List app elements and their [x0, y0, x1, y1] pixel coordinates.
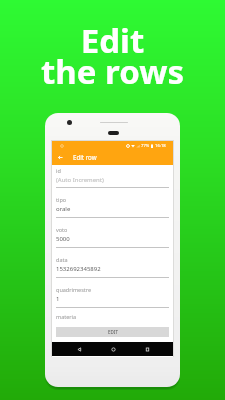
button[interactable]: Recent apps: [141, 343, 153, 355]
staticText: Edit the rows: [0, 18, 225, 93]
staticText: data: [56, 256, 68, 263]
staticText: 5000: [56, 235, 70, 243]
staticText: orale: [56, 205, 71, 213]
staticText: (Auto Increment): [56, 176, 104, 184]
staticText: quadrimestre: [56, 286, 92, 293]
button[interactable]: EDIT: [56, 327, 169, 337]
staticText: EDIT: [108, 329, 118, 335]
staticText: materia: [56, 313, 77, 320]
staticText: 1532692345892: [56, 265, 101, 273]
button[interactable]: Home: [107, 343, 119, 355]
staticText: 1: [56, 295, 60, 303]
staticText: 16:18: [155, 143, 166, 149]
staticText: id: [56, 167, 61, 174]
staticText: Edit row: [73, 153, 97, 161]
staticText: voto: [56, 226, 68, 233]
staticText: tipo: [56, 196, 67, 203]
button[interactable]: Back: [54, 151, 67, 164]
button[interactable]: Back: [73, 343, 85, 355]
staticText: 77%: [141, 143, 150, 149]
